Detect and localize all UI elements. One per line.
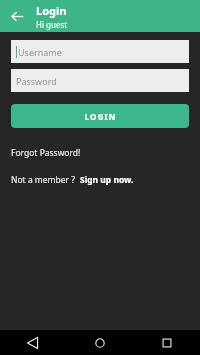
button[interactable]: LOGIN — [11, 104, 189, 128]
button[interactable]: Recent apps — [133, 330, 200, 355]
button[interactable]: Password — [11, 69, 189, 92]
button[interactable]: Back — [0, 330, 66, 355]
staticText: Password — [16, 75, 57, 87]
staticText: Login — [36, 3, 67, 18]
staticText: Sign up now. — [80, 174, 134, 186]
button[interactable]: Forgot Password! — [11, 147, 81, 159]
button[interactable]: Username — [11, 40, 189, 63]
staticText: Not a member ? — [11, 174, 75, 186]
staticText: Forgot Password! — [11, 147, 81, 159]
button[interactable]: Sign up now. — [80, 174, 134, 186]
staticText: Hi guest — [36, 19, 68, 30]
button[interactable]: Back — [6, 5, 28, 27]
button[interactable]: Home — [66, 330, 133, 355]
staticText: LOGIN — [84, 111, 117, 122]
staticText: Username — [18, 46, 62, 58]
